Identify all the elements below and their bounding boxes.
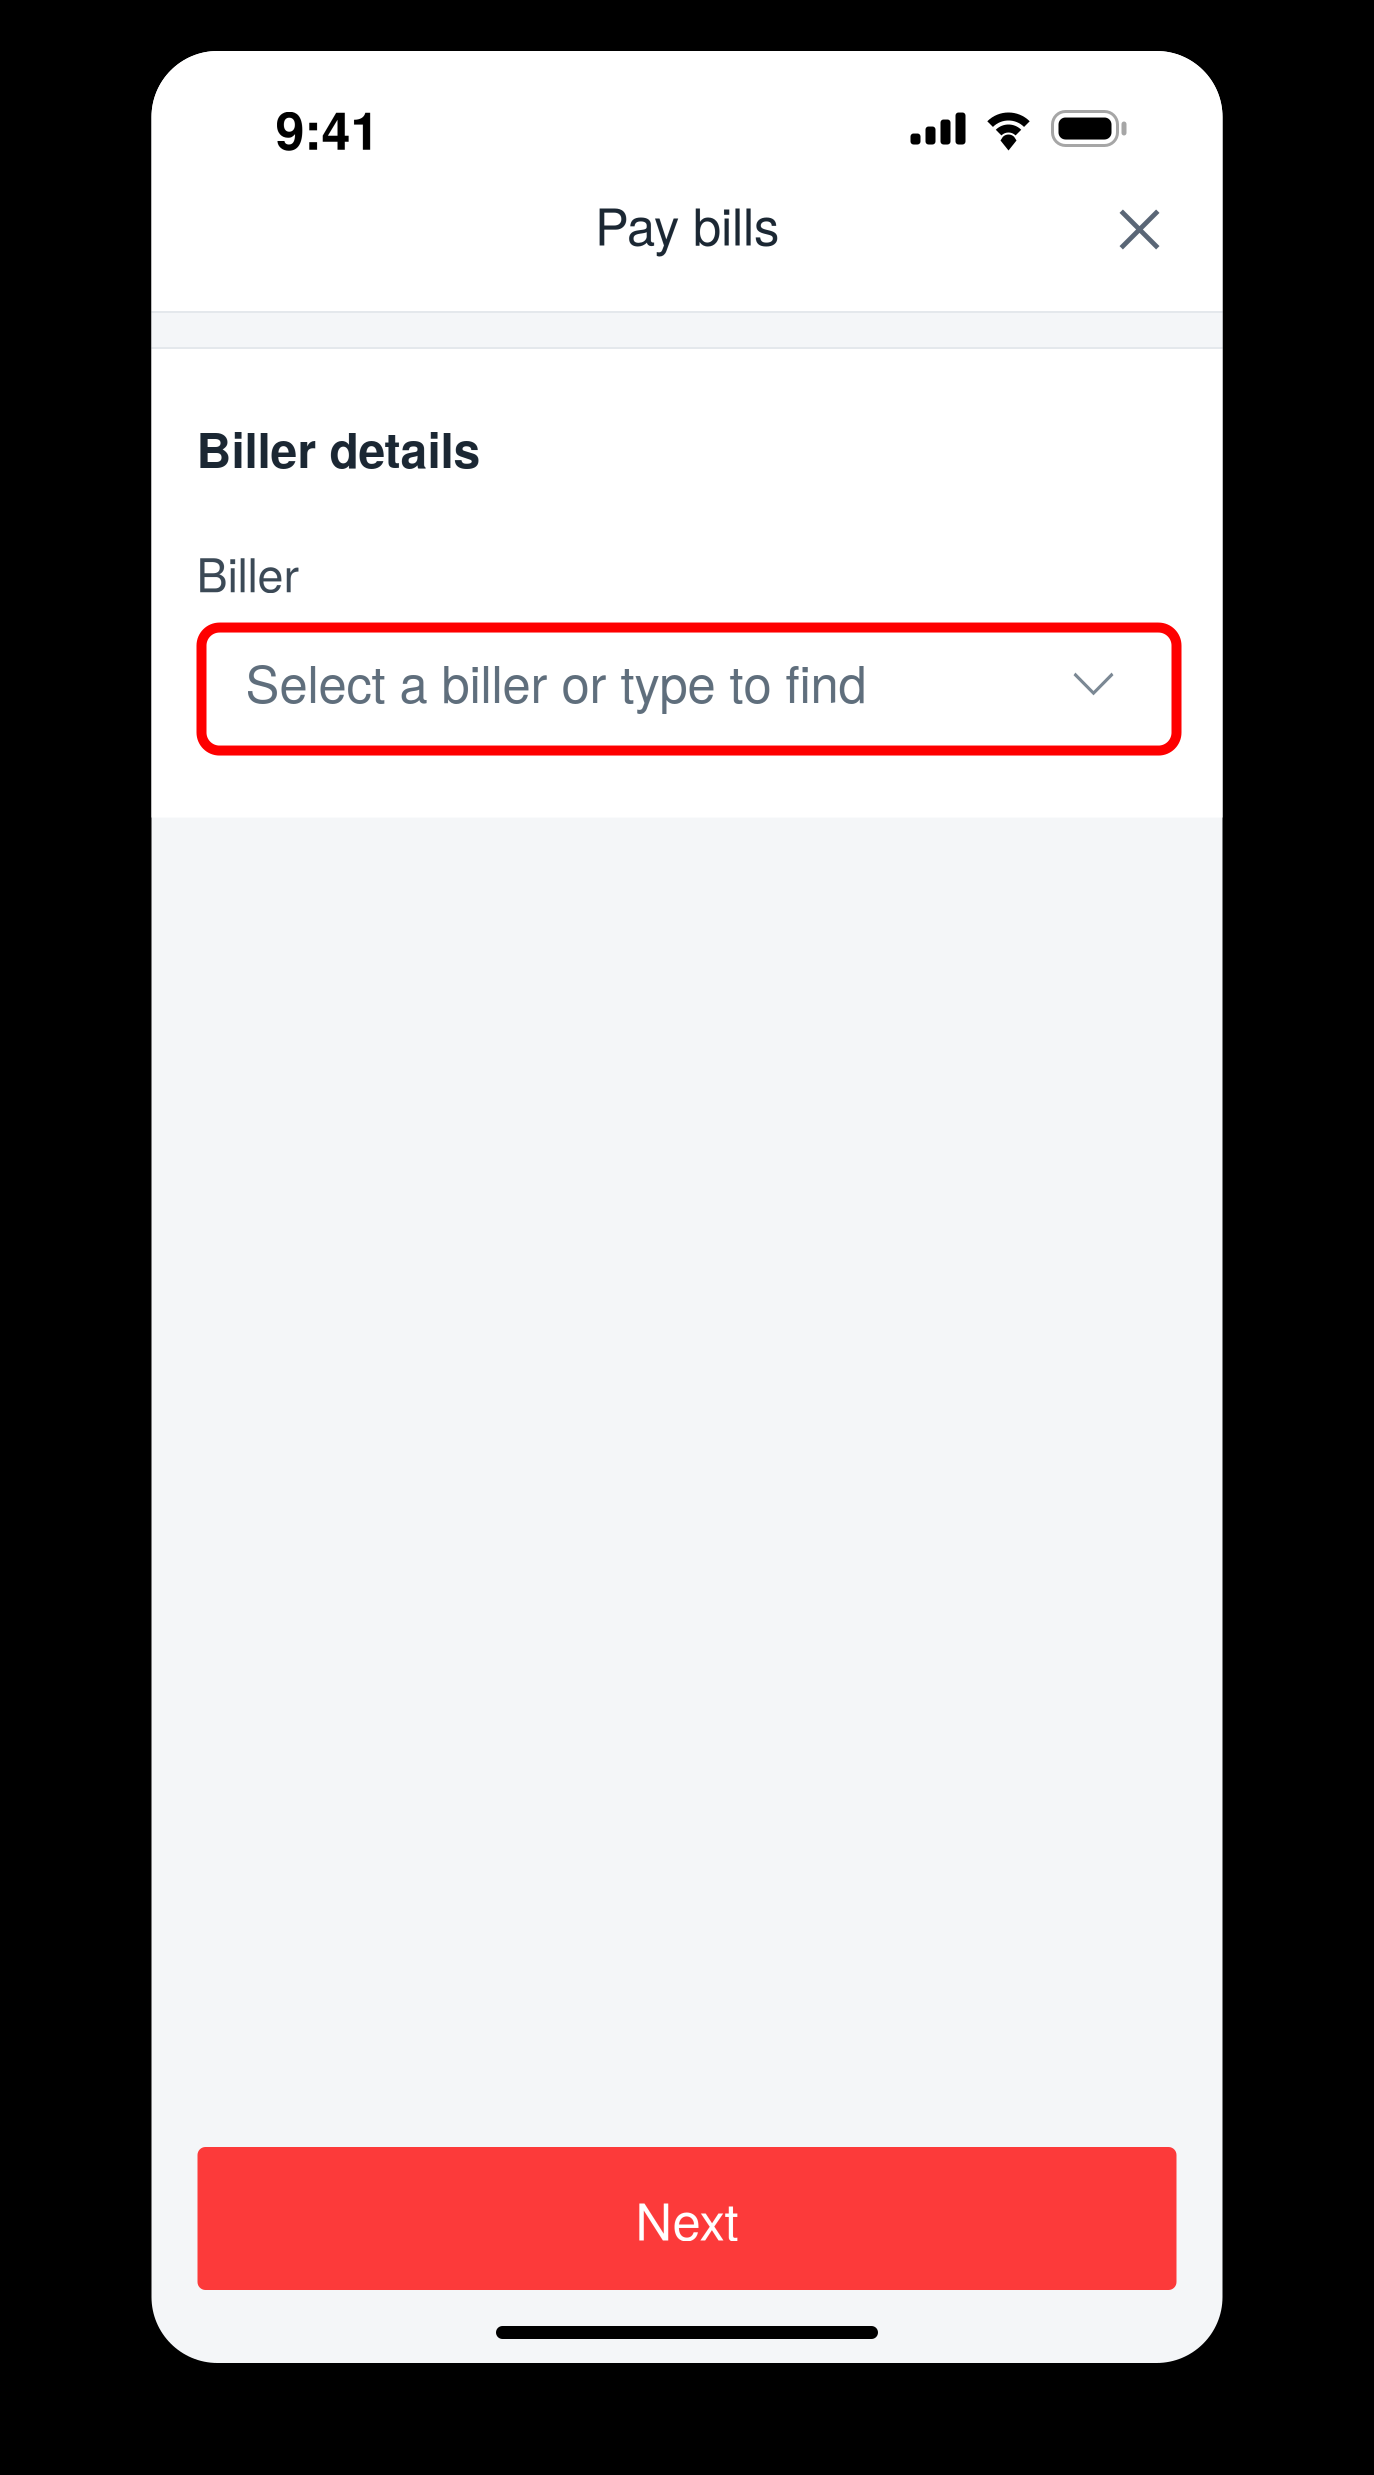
staticText: Biller	[196, 539, 299, 605]
button[interactable]: Next	[197, 2147, 1176, 2290]
staticText: 9:41	[275, 91, 379, 166]
staticText: Biller details	[196, 414, 480, 483]
staticText: Select a biller or type to find	[245, 645, 866, 717]
staticText: Pay bills	[595, 187, 779, 260]
button[interactable]: Close	[1089, 173, 1189, 273]
button[interactable]: Select a biller or type to find	[196, 628, 1181, 751]
staticText: Next	[635, 2182, 738, 2255]
